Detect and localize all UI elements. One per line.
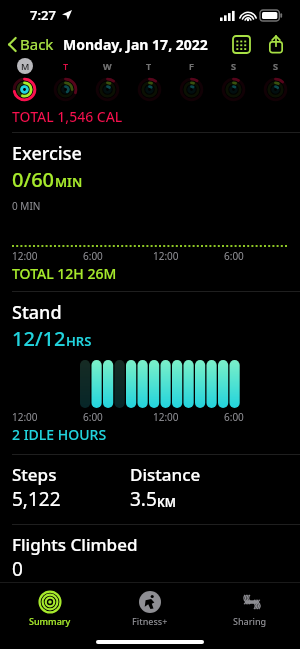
staticText: Monday, Jan 17, 2022	[63, 35, 208, 54]
button[interactable]: Calendar	[229, 32, 253, 56]
staticText: Summary	[29, 615, 71, 627]
staticText: 12:00	[153, 249, 179, 263]
button[interactable]: Flights Climbed	[12, 533, 138, 582]
button[interactable]: W	[86, 58, 128, 106]
staticText: Flights Climbed	[12, 533, 138, 556]
staticText: 6:00	[83, 410, 103, 424]
button[interactable]: Share	[264, 32, 288, 56]
staticText: 5,122	[12, 486, 61, 512]
button[interactable]: Steps	[12, 463, 130, 512]
staticText: Back	[20, 34, 54, 54]
button[interactable]: T	[45, 58, 86, 106]
staticText: T	[146, 60, 152, 72]
staticText: F	[189, 60, 194, 72]
staticText: HRS	[66, 332, 92, 350]
staticText: 0/60	[12, 166, 55, 193]
button[interactable]: Back	[8, 34, 54, 54]
staticText: Stand	[12, 300, 62, 325]
staticText: 6:00	[224, 410, 244, 424]
button[interactable]: Fitness+	[100, 583, 200, 635]
button[interactable]: Stand	[0, 291, 300, 454]
staticText: KM	[157, 494, 176, 510]
staticText: 3.5	[130, 486, 157, 512]
button[interactable]: T	[128, 58, 170, 106]
staticText: 0 MIN	[12, 199, 41, 213]
button[interactable]: Exercise	[0, 132, 300, 291]
button[interactable]: Sharing	[200, 583, 300, 635]
button[interactable]: Distance	[130, 463, 300, 512]
button[interactable]: S	[212, 58, 254, 106]
button[interactable]: F	[170, 58, 212, 106]
staticText: Exercise	[12, 141, 82, 166]
staticText: Steps	[12, 463, 57, 486]
staticText: T	[63, 60, 69, 72]
staticText: M	[21, 60, 30, 72]
staticText: Distance	[130, 463, 201, 486]
staticText: Fitness+	[132, 615, 168, 627]
button[interactable]: Summary	[0, 583, 100, 635]
staticText: 12:00	[153, 410, 179, 424]
button[interactable]: M	[4, 58, 45, 106]
staticText: TOTAL 12H 26M	[12, 264, 117, 283]
staticText: S	[231, 60, 236, 72]
staticText: MIN	[55, 173, 83, 191]
staticText: Sharing	[233, 615, 267, 627]
staticText: 12:00	[12, 410, 38, 424]
staticText: W	[103, 60, 112, 72]
staticText: 0	[12, 556, 23, 582]
staticText: 12:00	[12, 249, 38, 263]
staticText: TOTAL 1,546 CAL	[12, 107, 123, 126]
staticText: 7:27	[30, 6, 56, 24]
staticText: 12/12	[12, 325, 66, 352]
staticText: 6:00	[224, 249, 244, 263]
staticText: S	[273, 60, 278, 72]
staticText: 2 IDLE HOURS	[12, 425, 107, 444]
button[interactable]: S	[254, 58, 296, 106]
staticText: 6:00	[83, 249, 103, 263]
